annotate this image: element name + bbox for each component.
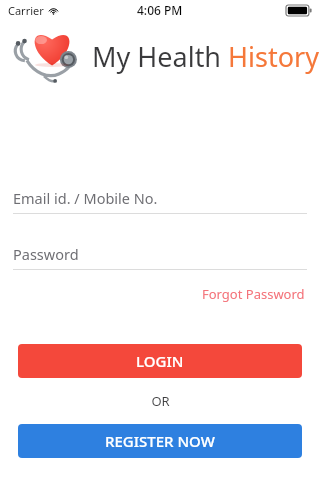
- staticText: LOGIN: [136, 351, 184, 371]
- button[interactable]: REGISTER NOW: [18, 424, 302, 458]
- staticText: 4:06 PM: [137, 2, 183, 18]
- staticText: OR: [151, 392, 170, 410]
- button[interactable]: Forgot Password: [200, 282, 307, 306]
- staticText: Password: [13, 244, 79, 264]
- staticText: Carrier: [8, 3, 44, 18]
- staticText: REGISTER NOW: [105, 431, 215, 451]
- staticText: My Health History: [92, 38, 319, 75]
- button[interactable]: LOGIN: [18, 344, 302, 378]
- staticText: Email id. / Mobile No.: [13, 188, 158, 208]
- button[interactable]: Password: [13, 238, 307, 270]
- button[interactable]: Email id. / Mobile No.: [13, 182, 307, 214]
- staticText: Forgot Password: [202, 285, 305, 303]
